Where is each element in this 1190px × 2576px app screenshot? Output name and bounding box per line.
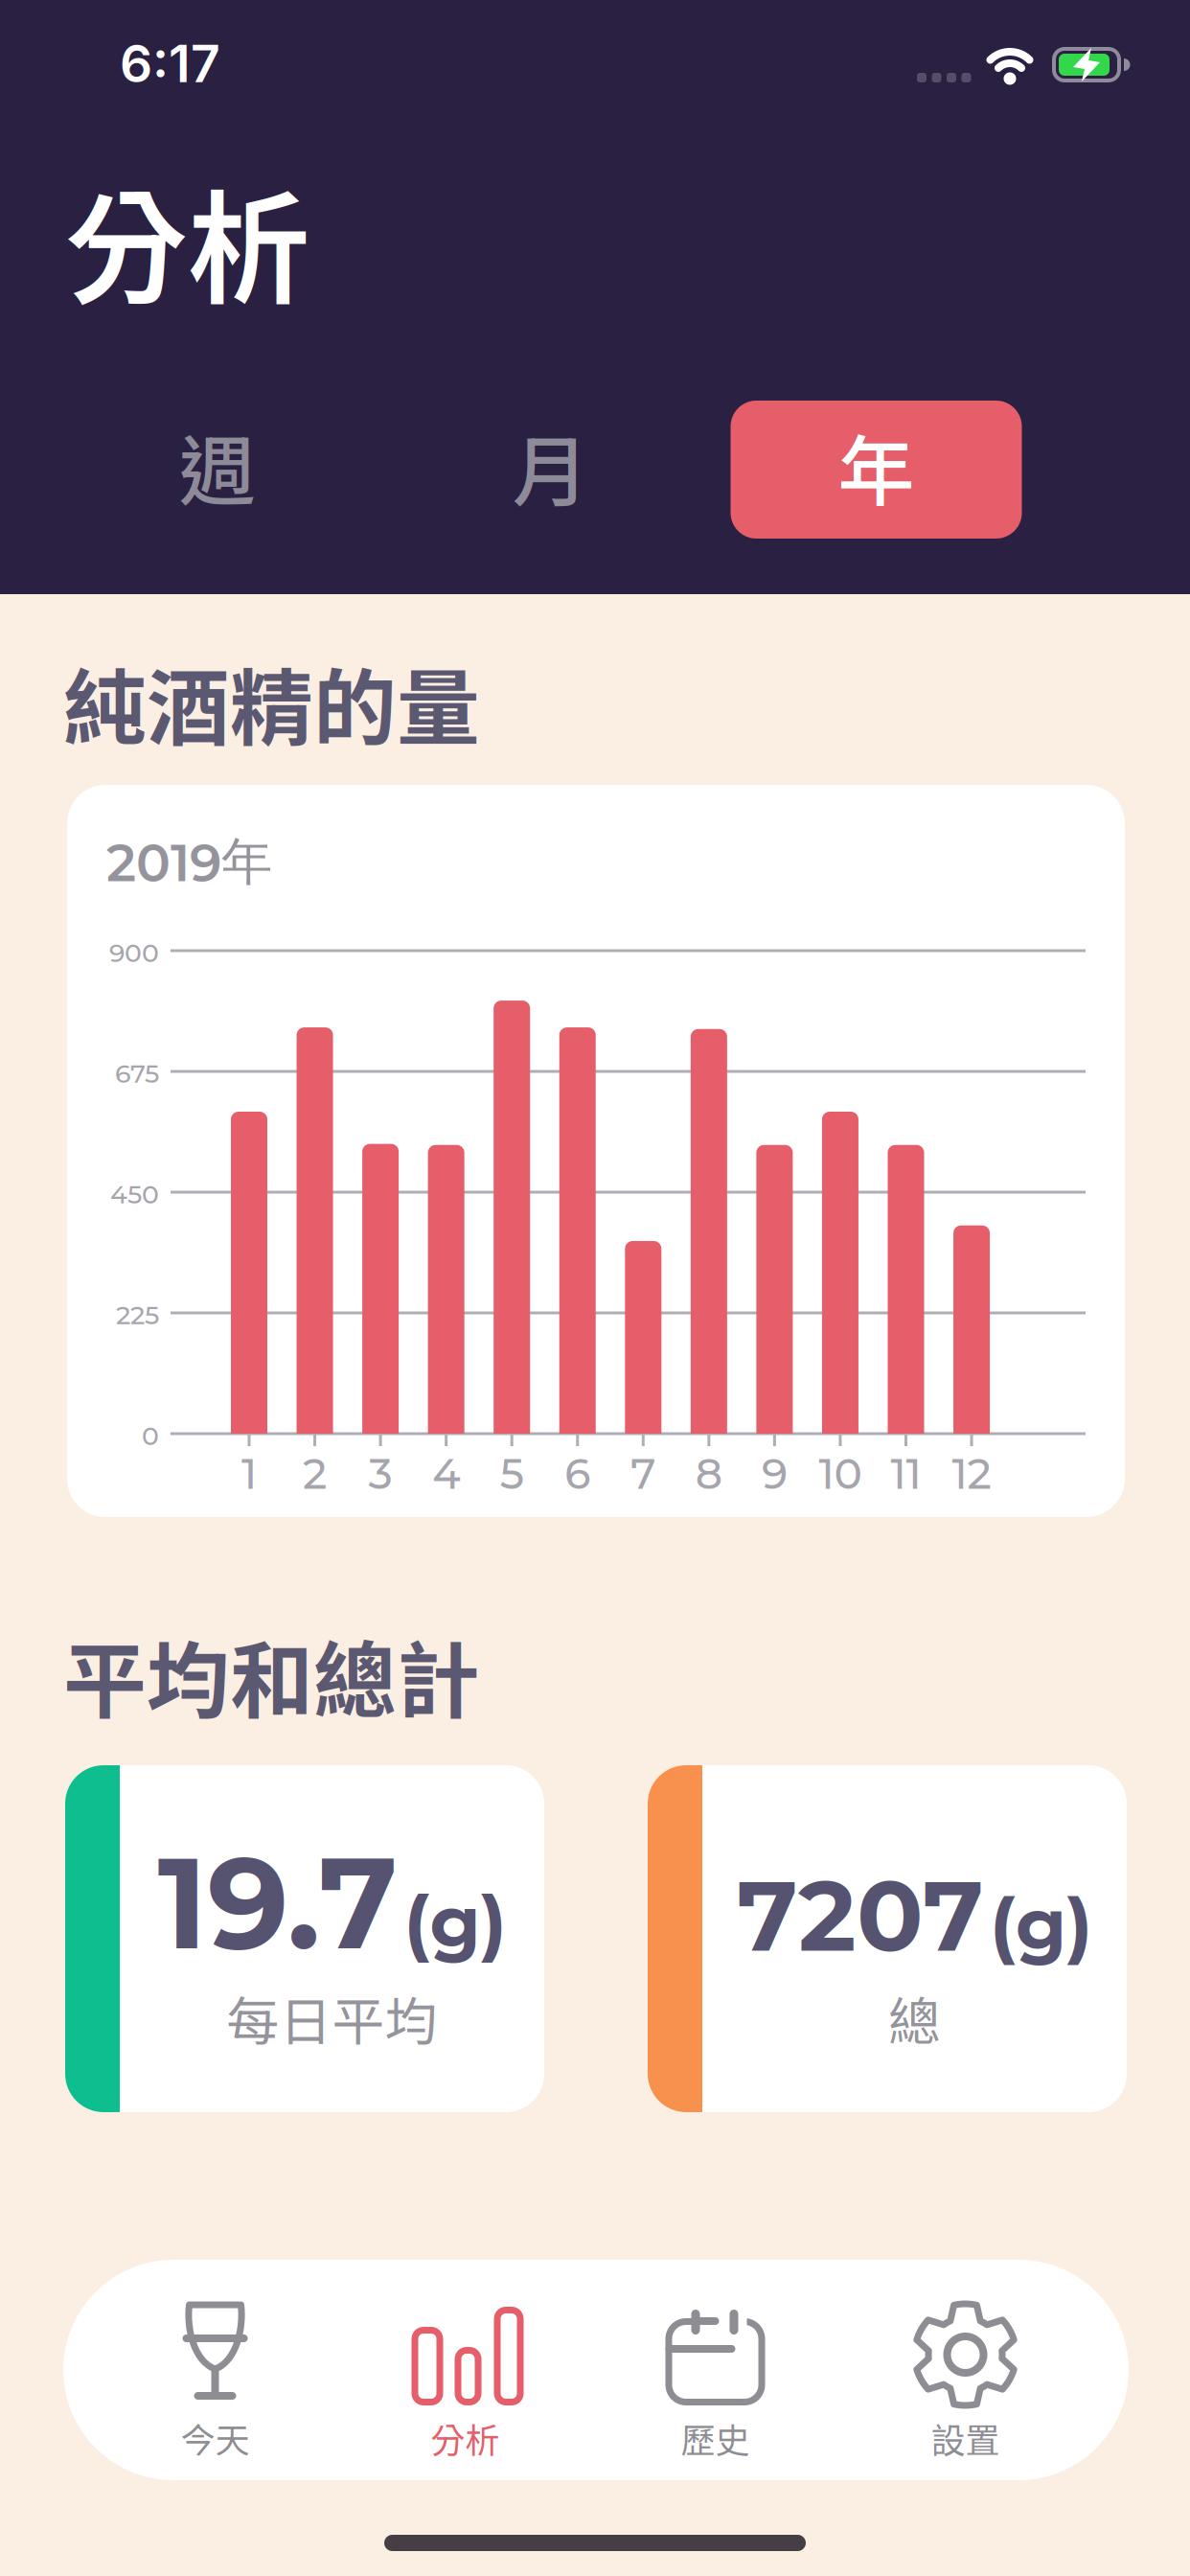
staticText: (g)	[404, 1878, 506, 1967]
staticText: 1	[241, 1448, 257, 1499]
staticText: 7	[631, 1448, 656, 1499]
staticText: 10	[819, 1448, 862, 1499]
staticText: 2	[303, 1448, 327, 1499]
staticText: 0	[142, 1420, 159, 1451]
staticText: 9	[762, 1448, 787, 1499]
staticText: 5	[500, 1448, 524, 1499]
staticText: 6:17	[120, 33, 220, 94]
staticText: 週	[179, 410, 255, 521]
staticText: 平均和總計	[63, 1615, 480, 1735]
staticText: 6	[565, 1448, 590, 1499]
staticText: 歷史	[681, 2413, 750, 2463]
staticText: 總	[888, 1980, 941, 2056]
staticText: 11	[891, 1448, 921, 1499]
staticText: 設置	[931, 2413, 1000, 2463]
staticText: 450	[110, 1179, 159, 1210]
staticText: 今天	[181, 2413, 250, 2463]
staticText: 每日平均	[227, 1980, 437, 2056]
staticText: 3	[368, 1448, 392, 1499]
staticText: 12	[952, 1448, 991, 1499]
staticText: 675	[115, 1058, 159, 1089]
staticText: 分析	[65, 151, 310, 329]
staticText: 純酒精的量	[63, 642, 480, 762]
staticText: 19.7	[158, 1825, 398, 1980]
staticText: 7207	[737, 1855, 984, 1975]
staticText: 年	[838, 410, 915, 521]
staticText: (g)	[990, 1880, 1092, 1969]
staticText: 4	[432, 1448, 460, 1499]
staticText: 分析	[431, 2413, 500, 2463]
staticText: 8	[695, 1448, 722, 1499]
staticText: 225	[116, 1299, 159, 1331]
staticText: 2019年	[106, 830, 272, 894]
staticText: 900	[109, 937, 159, 968]
staticText: 月	[512, 410, 589, 521]
